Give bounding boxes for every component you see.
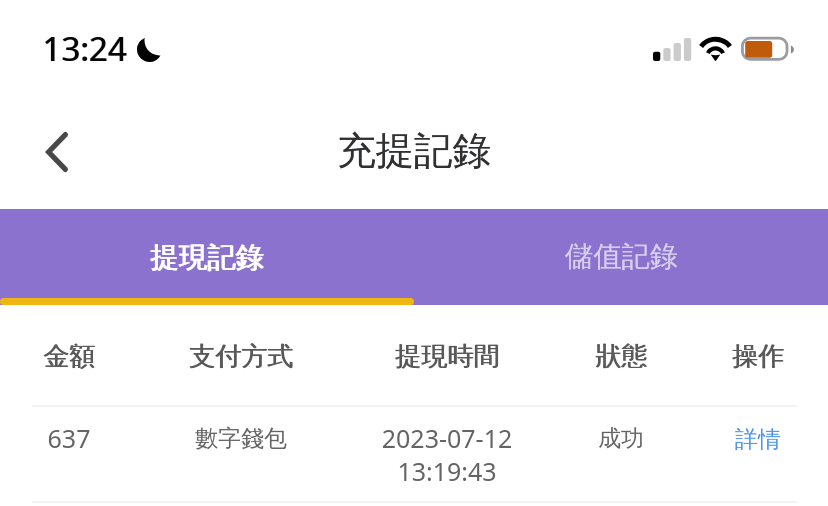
staticText: 儲值記錄 [565,239,679,275]
staticText: 充提記錄 [0,127,828,176]
button[interactable]: 詳情 [712,414,804,464]
staticText: 支付方式 [81,340,401,373]
staticText: 13:24 [42,26,127,71]
staticText: 詳情 [735,425,781,454]
staticText: 成功 [461,424,781,453]
staticText: 提現記錄 [150,240,264,276]
staticText: 提現時間 [288,340,608,373]
staticText: 狀態 [461,340,781,373]
staticText: 2023-07-12 13:19:43 [287,421,607,488]
staticText: 提現時間 [287,340,607,373]
staticText: 13:24 [43,26,128,71]
staticText: 金額 [0,340,230,373]
staticText: 支付方式 [82,340,402,373]
staticText: 操作 [598,340,828,373]
staticText: 操作 [599,340,828,373]
staticText: 數字錢包 [81,424,401,453]
staticText: 637 [0,421,229,455]
staticText: 金額 [0,340,229,373]
button[interactable]: 提現記錄 [0,209,414,305]
staticText: 充提記錄 [0,127,828,176]
staticText: 提現記錄 [151,240,265,276]
button[interactable]: 儲值記錄 [414,209,828,305]
button[interactable] [0,407,828,501]
button[interactable]: Back [14,109,100,195]
staticText: 狀態 [462,340,782,373]
